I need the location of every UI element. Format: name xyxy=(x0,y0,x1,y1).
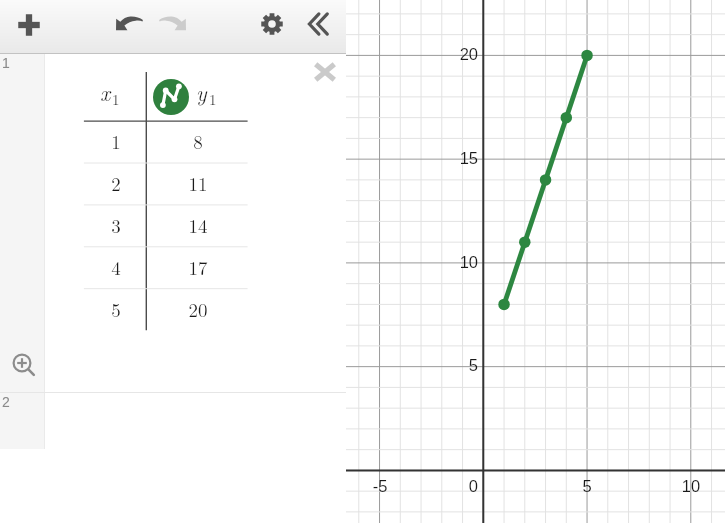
staticText: 10 xyxy=(671,477,711,495)
staticText: 5 xyxy=(86,296,146,323)
button[interactable]: Collapse panel xyxy=(297,2,341,46)
button[interactable]: Delete xyxy=(307,54,343,90)
staticText: 20 xyxy=(438,45,478,63)
staticText: 1 xyxy=(112,88,120,109)
staticText: x xyxy=(100,76,111,107)
staticText: 2 xyxy=(2,394,10,410)
staticText: 1 xyxy=(209,88,217,109)
staticText: 5 xyxy=(567,477,607,495)
button[interactable]: Settings xyxy=(250,2,294,46)
button[interactable] xyxy=(0,393,44,449)
staticText: 4 xyxy=(86,254,146,281)
staticText: -5 xyxy=(360,477,400,495)
button[interactable]: Plot settings xyxy=(153,79,189,115)
staticText: 17 xyxy=(168,254,228,281)
staticText: 8 xyxy=(168,128,228,155)
button[interactable]: Zoom to fit xyxy=(2,343,42,383)
staticText: 3 xyxy=(86,212,146,239)
staticText: 14 xyxy=(168,212,228,239)
staticText: 1 xyxy=(86,128,146,155)
staticText: 20 xyxy=(168,296,228,323)
staticText: 11 xyxy=(168,170,228,197)
button[interactable]: Add item xyxy=(7,3,51,47)
staticText: 0 xyxy=(438,477,478,495)
staticText: 10 xyxy=(438,253,478,271)
button[interactable]: Redo xyxy=(151,2,195,46)
button[interactable]: Undo xyxy=(107,2,151,46)
staticText: 2 xyxy=(86,170,146,197)
staticText: 15 xyxy=(438,149,478,167)
staticText: 5 xyxy=(438,356,478,374)
button[interactable] xyxy=(0,54,44,392)
staticText: 1 xyxy=(2,55,10,71)
staticText: y xyxy=(196,76,207,107)
